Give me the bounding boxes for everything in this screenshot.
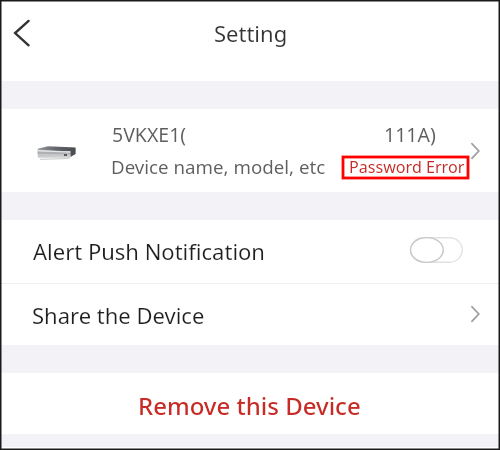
button[interactable]: Remove this Device — [0, 373, 500, 434]
button[interactable]: Back — [2, 8, 46, 58]
staticText: Share the Device — [32, 300, 205, 330]
staticText: Alert Push Notification — [33, 236, 265, 266]
staticText: Device name, model, etc — [111, 154, 326, 179]
button[interactable]: Share the Device — [0, 284, 500, 345]
staticText: 111A) — [384, 121, 436, 148]
staticText: 5VKXE1( — [112, 121, 187, 148]
staticText: Setting — [214, 18, 288, 48]
staticText: Password Error — [349, 156, 465, 178]
button[interactable]: 5VKXE1( — [0, 109, 500, 192]
button[interactable]: Alert Push Notification switch, off — [410, 237, 463, 263]
staticText: Remove this Device — [138, 389, 361, 422]
button[interactable]: Alert Push Notification — [0, 220, 500, 283]
